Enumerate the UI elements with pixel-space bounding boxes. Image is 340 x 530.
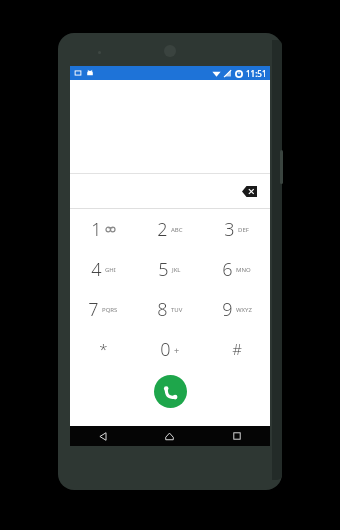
button[interactable]: Backspace: [234, 176, 264, 206]
staticText: 3: [224, 217, 235, 242]
button[interactable]: 9: [203, 289, 270, 329]
staticText: JKL: [172, 266, 181, 274]
staticText: 11:51: [246, 68, 267, 79]
button[interactable]: 7: [70, 289, 136, 329]
button[interactable]: Recents: [203, 426, 270, 446]
staticText: 5: [158, 257, 169, 282]
staticText: 4: [91, 257, 102, 282]
staticText: DEF: [238, 226, 249, 234]
button[interactable]: 5: [136, 249, 203, 289]
staticText: 7: [88, 297, 99, 322]
staticText: 9: [222, 297, 233, 322]
button[interactable]: 2: [136, 209, 203, 249]
button[interactable]: #: [203, 329, 270, 369]
button[interactable]: 4: [70, 249, 136, 289]
button[interactable]: 0: [136, 329, 203, 369]
button[interactable]: 1: [70, 209, 136, 249]
staticText: *: [99, 339, 108, 359]
staticText: TUV: [171, 306, 183, 314]
staticText: 2: [157, 217, 168, 242]
staticText: 0: [160, 337, 171, 362]
staticText: 8: [157, 297, 168, 322]
staticText: WXYZ: [236, 306, 252, 314]
button[interactable]: 6: [203, 249, 270, 289]
button[interactable]: 3: [203, 209, 270, 249]
staticText: MNO: [236, 266, 251, 274]
staticText: PQRS: [102, 306, 118, 314]
staticText: GHI: [105, 266, 116, 274]
button[interactable]: Home: [136, 426, 203, 446]
staticText: #: [232, 339, 242, 359]
button[interactable]: Back: [70, 426, 136, 446]
staticText: 6: [222, 257, 233, 282]
button[interactable]: *: [70, 329, 136, 369]
staticText: +: [174, 344, 180, 356]
button[interactable]: Call: [154, 375, 187, 408]
staticText: 1: [91, 217, 102, 242]
staticText: ABC: [171, 226, 183, 234]
button[interactable]: 8: [136, 289, 203, 329]
